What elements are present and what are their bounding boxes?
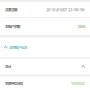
staticText: 主账户余额 [5, 24, 20, 29]
button[interactable]: 总计 [0, 58, 90, 74]
staticText: 2018/05/07 23:59:59 [46, 7, 85, 12]
staticText: 总计 [5, 64, 11, 69]
staticText: 其他账户信息 [9, 45, 27, 50]
button[interactable]: 其他账户信息 [0, 37, 90, 57]
staticText: 20元 [78, 24, 85, 29]
staticText: 免费体验项目 [5, 81, 23, 86]
staticText: 100.00 [71, 81, 85, 86]
staticText: 开票日期 [5, 7, 17, 12]
